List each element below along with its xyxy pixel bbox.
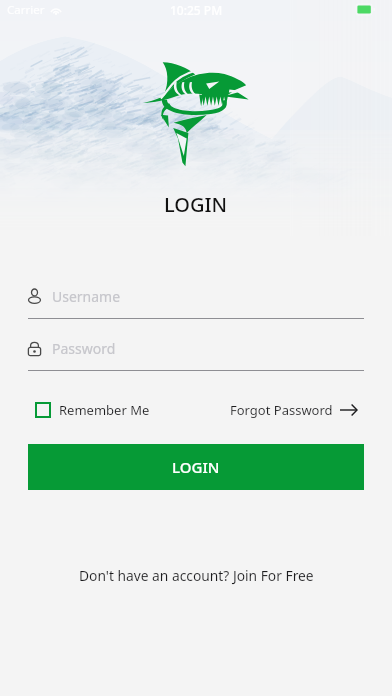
- button[interactable]: Password: [28, 338, 364, 371]
- staticText: Username: [52, 287, 121, 306]
- button[interactable]: Forgot Password: [230, 399, 357, 421]
- other: Forgot Password: [340, 404, 357, 416]
- staticText: LOGIN: [164, 191, 228, 218]
- staticText: 10:25 PM: [170, 2, 223, 18]
- staticText: Password: [52, 339, 116, 358]
- button[interactable]: Don't have an account? Join For Free: [73, 563, 320, 588]
- button[interactable]: Remember Me: [35, 399, 150, 421]
- button[interactable]: Username: [28, 286, 364, 319]
- staticText: Forgot Password: [230, 401, 333, 419]
- staticText: LOGIN: [172, 457, 220, 477]
- staticText: Carrier: [7, 2, 45, 18]
- button[interactable]: LOGIN: [28, 444, 364, 490]
- staticText: Remember Me: [59, 401, 150, 419]
